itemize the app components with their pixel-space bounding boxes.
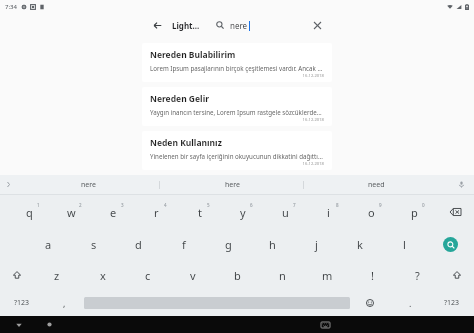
button[interactable]: Hide keyboard — [316, 316, 334, 333]
button[interactable]: p — [393, 195, 436, 229]
button[interactable]: Voice input — [448, 175, 474, 194]
staticText: 7:34 — [5, 3, 17, 11]
staticText: l — [403, 237, 406, 252]
button[interactable]: i — [307, 195, 350, 229]
staticText: ! — [371, 268, 374, 283]
button[interactable]: y — [221, 195, 264, 229]
staticText: y — [240, 205, 246, 220]
button[interactable]: q — [8, 195, 50, 229]
button[interactable]: ? — [395, 260, 440, 290]
button[interactable]: ?123 — [430, 290, 474, 316]
button[interactable]: n — [260, 260, 305, 290]
button[interactable]: Home — [40, 316, 58, 333]
staticText: 9 — [379, 202, 382, 208]
button[interactable]: Backspace — [436, 195, 474, 229]
button[interactable]: r — [135, 195, 178, 229]
staticText: 3 — [121, 202, 124, 208]
button[interactable]: need — [304, 175, 448, 194]
staticText: o — [368, 205, 375, 220]
staticText: 16.12.2018 — [150, 161, 324, 167]
button[interactable]: Shift — [0, 260, 34, 290]
button[interactable]: m — [305, 260, 350, 290]
staticText: t — [198, 205, 202, 220]
button[interactable]: c — [125, 260, 170, 290]
button[interactable]: g — [206, 229, 250, 260]
staticText: e — [110, 205, 117, 220]
staticText: Yaygın inancın tersine, Lorem Ipsum rast… — [150, 108, 324, 116]
staticText: v — [190, 268, 196, 283]
button[interactable]: , — [44, 290, 84, 316]
staticText: 0 — [422, 202, 425, 208]
staticText: ?123 — [444, 298, 460, 308]
staticText: . — [409, 297, 412, 309]
button[interactable]: . — [390, 290, 430, 316]
button[interactable]: x — [80, 260, 125, 290]
button[interactable]: Nereden Bulabilirim — [142, 43, 332, 82]
staticText: ? — [415, 268, 420, 283]
staticText: 1 — [37, 202, 40, 208]
button[interactable]: u — [264, 195, 307, 229]
button[interactable]: ! — [350, 260, 395, 290]
staticText: 7 — [293, 202, 296, 208]
staticText: Nereden Gelir — [150, 93, 209, 105]
staticText: u — [282, 205, 289, 220]
staticText: 16.12.2018 — [150, 73, 324, 79]
staticText: h — [269, 237, 276, 252]
button[interactable]: j — [294, 229, 338, 260]
button[interactable]: nere — [16, 175, 160, 194]
button[interactable]: w — [50, 195, 92, 229]
staticText: b — [234, 268, 241, 283]
staticText: Yinelenen bir sayfa içeriğinin okuyucunu… — [150, 152, 324, 160]
button[interactable]: e — [92, 195, 135, 229]
staticText: j — [315, 237, 318, 252]
button[interactable]: Clear search — [308, 16, 326, 34]
staticText: i — [327, 205, 330, 220]
staticText: g — [225, 237, 232, 252]
staticText: 4 — [164, 202, 167, 208]
staticText: ?123 — [14, 298, 30, 308]
staticText: , — [63, 297, 66, 309]
staticText: Light... — [172, 20, 200, 31]
staticText: 8 — [336, 202, 339, 208]
staticText: nere — [230, 20, 248, 31]
staticText: a — [45, 237, 52, 252]
button[interactable]: here — [160, 175, 304, 194]
button[interactable]: Emoji — [350, 290, 390, 316]
staticText: 6 — [250, 202, 253, 208]
button[interactable]: Nereden Gelir — [142, 87, 332, 126]
button[interactable]: Back — [10, 316, 28, 333]
button[interactable]: b — [215, 260, 260, 290]
staticText: need — [368, 180, 385, 190]
staticText: q — [26, 205, 33, 220]
button[interactable]: s — [71, 229, 116, 260]
staticText: n — [279, 268, 286, 283]
button[interactable]: v — [170, 260, 215, 290]
button[interactable]: Neden Kullanınız — [142, 131, 332, 170]
button[interactable]: ?123 — [0, 290, 44, 316]
button[interactable]: h — [250, 229, 294, 260]
staticText: 2 — [79, 202, 82, 208]
button[interactable]: t — [178, 195, 221, 229]
staticText: 5 — [207, 202, 210, 208]
staticText: here — [225, 180, 240, 190]
staticText: m — [322, 268, 333, 283]
button[interactable]: k — [338, 229, 382, 260]
button[interactable]: Search — [426, 229, 474, 260]
staticText: w — [67, 205, 76, 220]
button[interactable]: z — [34, 260, 80, 290]
button[interactable]: a — [26, 229, 71, 260]
button[interactable]: Back — [148, 16, 166, 34]
staticText: nere — [81, 180, 96, 190]
button[interactable]: Shift — [440, 260, 474, 290]
staticText: p — [411, 205, 418, 220]
staticText: 16.12.2018 — [150, 117, 324, 123]
staticText: c — [145, 268, 151, 283]
button[interactable]: f — [161, 229, 206, 260]
button[interactable]: l — [382, 229, 426, 260]
staticText: Neden Kullanınız — [150, 137, 222, 149]
button[interactable]: More suggestions — [0, 175, 16, 194]
button[interactable]: o — [350, 195, 393, 229]
button[interactable]: d — [116, 229, 161, 260]
staticText: x — [100, 268, 106, 283]
